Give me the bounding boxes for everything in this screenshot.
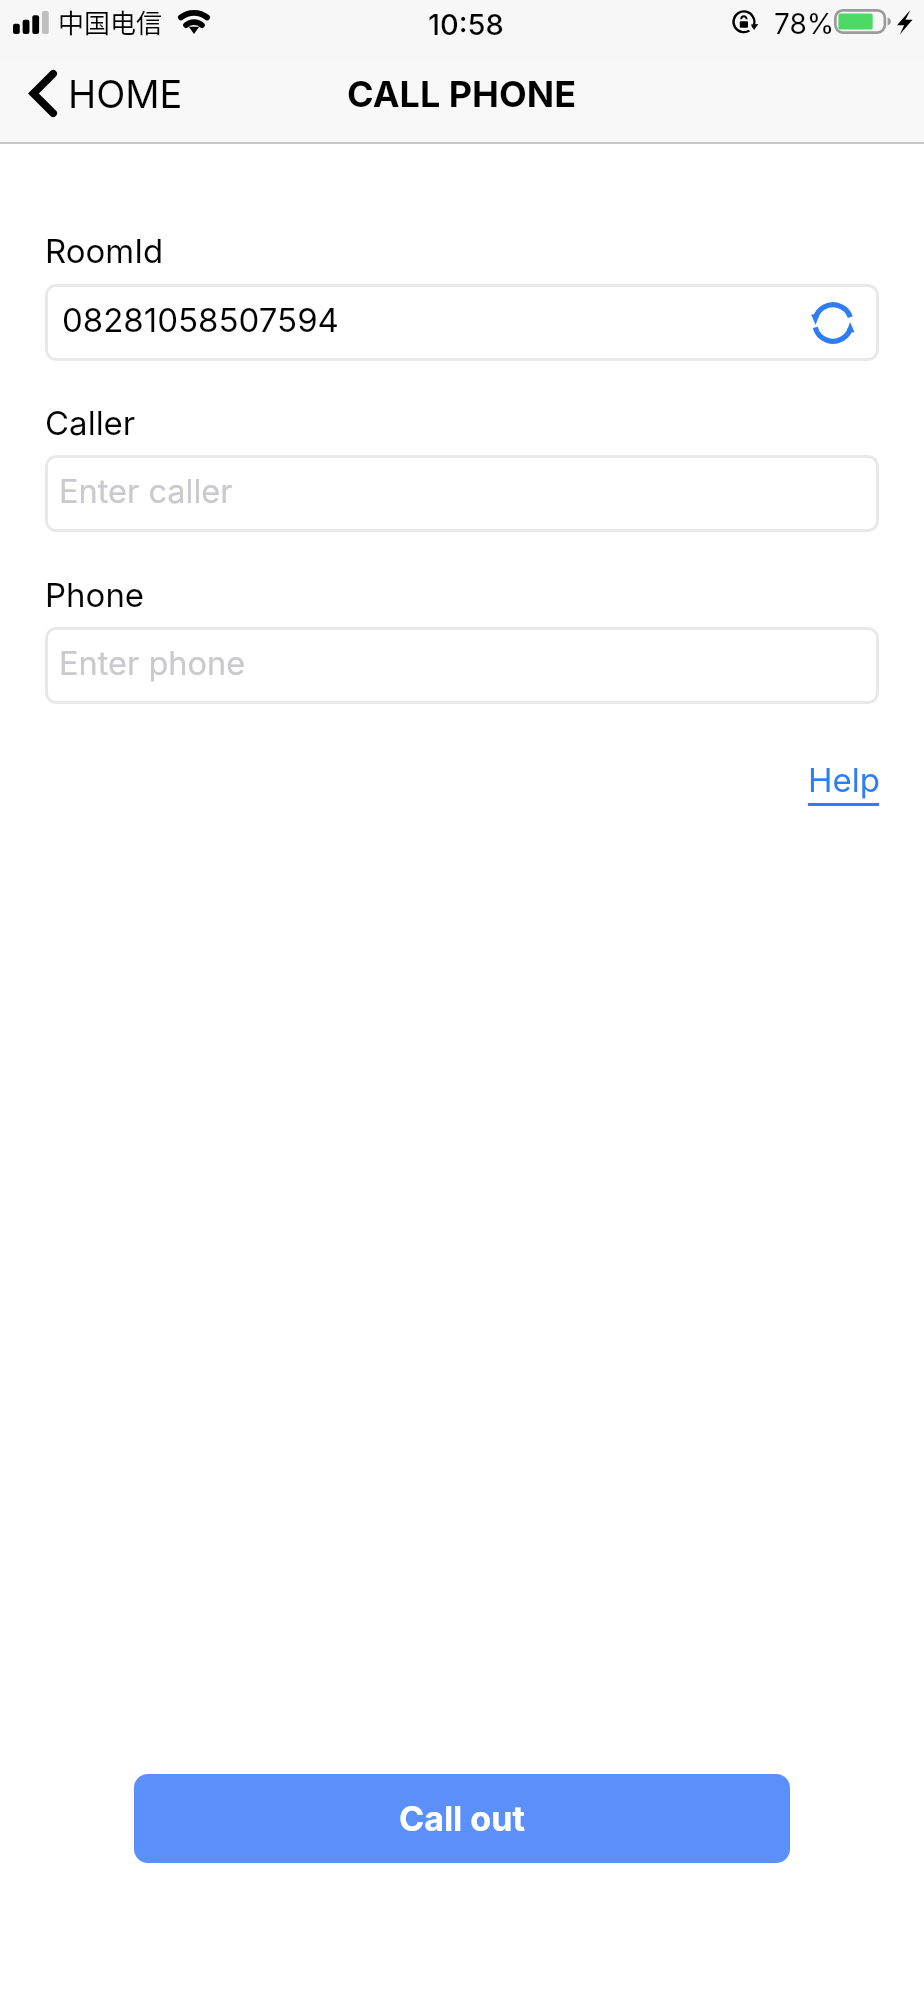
staticText: Enter phone: [59, 644, 246, 683]
staticText: Call out: [399, 1798, 525, 1839]
other: Rotation lock: [733, 10, 759, 34]
staticText: 78%: [774, 7, 835, 41]
button[interactable]: Refresh room id: [806, 296, 860, 350]
button[interactable]: Call out: [134, 1774, 790, 1863]
button[interactable]: 08281058507594: [45, 284, 879, 361]
staticText: 中国电信: [58, 3, 163, 41]
staticText: 10:58: [428, 7, 504, 42]
staticText: Caller: [45, 403, 136, 443]
other: Battery 78 percent: [834, 9, 892, 34]
staticText: Phone: [45, 575, 145, 615]
button[interactable]: Back to HOME: [11, 52, 201, 135]
staticText: 08281058507594: [62, 300, 339, 340]
staticText: RoomId: [45, 231, 164, 271]
button[interactable]: Help: [802, 754, 886, 808]
button[interactable]: Enter phone: [45, 627, 879, 704]
other: Charging: [897, 10, 914, 35]
other: Cellular signal: [13, 10, 49, 34]
other: Wi-Fi: [178, 10, 211, 35]
staticText: HOME: [68, 71, 183, 117]
button[interactable]: Enter caller: [45, 455, 879, 532]
staticText: CALL PHONE: [347, 72, 577, 116]
staticText: Enter caller: [59, 472, 233, 511]
staticText: Help: [808, 760, 880, 800]
